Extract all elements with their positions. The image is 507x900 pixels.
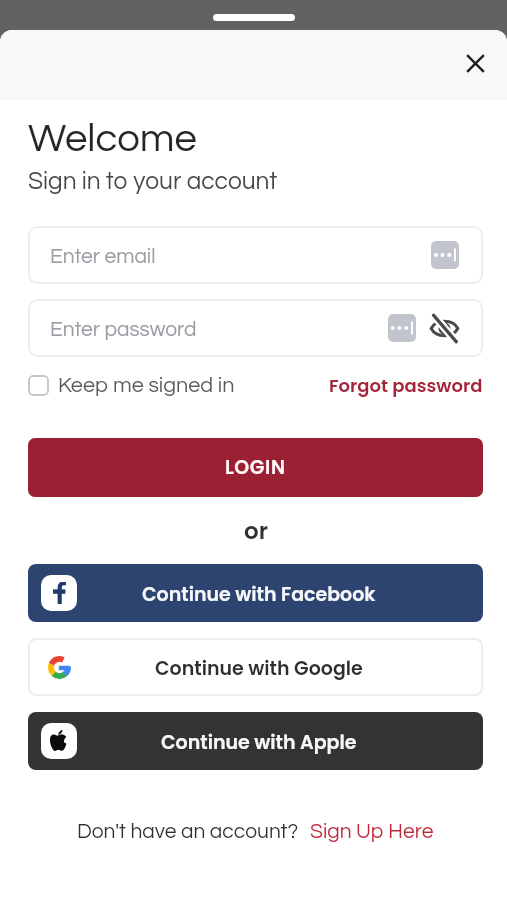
staticText: Enter email xyxy=(50,246,156,268)
button[interactable]: Close xyxy=(453,41,497,85)
staticText: Continue with Google xyxy=(155,655,363,682)
button[interactable]: Continue with Apple xyxy=(28,712,483,770)
staticText: Sign in to your account xyxy=(28,169,278,194)
staticText: Enter password xyxy=(50,319,197,341)
button[interactable]: Continue with Google xyxy=(28,638,483,696)
staticText: LOGIN xyxy=(225,454,286,481)
button[interactable]: Continue with Facebook xyxy=(28,564,483,622)
staticText: or xyxy=(244,515,268,547)
staticText: Welcome xyxy=(28,118,197,159)
staticText: Sign Up Here xyxy=(310,821,434,843)
button[interactable]: Sign Up Here xyxy=(310,821,434,843)
button[interactable]: Enter password xyxy=(28,299,483,357)
staticText: Continue with Apple xyxy=(161,729,357,756)
button[interactable]: Show password xyxy=(429,313,459,343)
button[interactable]: Forgot password xyxy=(329,373,483,397)
button[interactable]: Keep me signed in xyxy=(28,374,235,396)
staticText: Continue with Facebook xyxy=(142,581,376,608)
button[interactable]: Enter email xyxy=(28,226,483,284)
staticText: Forgot password xyxy=(329,373,483,397)
staticText: Don't have an account? xyxy=(77,821,299,843)
button[interactable]: LOGIN xyxy=(28,438,483,497)
staticText: Keep me signed in xyxy=(58,374,235,396)
